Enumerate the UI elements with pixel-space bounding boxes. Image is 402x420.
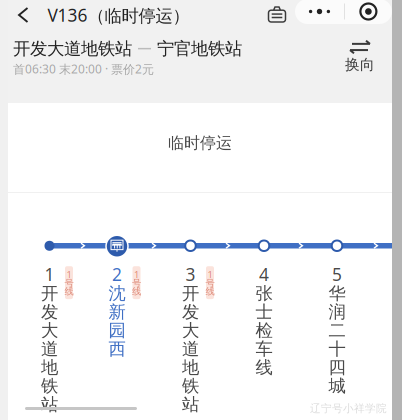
staticText: 四 xyxy=(328,357,345,378)
staticText: 1 xyxy=(66,268,71,281)
button[interactable]: 3 xyxy=(179,263,221,419)
staticText: 士 xyxy=(255,301,272,323)
staticText: 发 xyxy=(41,301,58,323)
staticText: 车 xyxy=(255,338,272,360)
staticText: 发 xyxy=(182,301,199,323)
staticText: 沈 xyxy=(108,283,125,304)
staticText: 铁 xyxy=(182,375,199,397)
staticText: V136（临时停运） xyxy=(47,3,189,26)
button[interactable]: 4 xyxy=(253,263,295,419)
staticText: 宁官地铁站 xyxy=(157,38,242,59)
staticText: 线 xyxy=(132,286,141,297)
staticText: 辽宁号小祥学院 xyxy=(310,402,387,415)
staticText: 道 xyxy=(41,338,58,360)
staticText: 临时停运 xyxy=(168,133,232,153)
staticText: 号 xyxy=(64,277,73,289)
staticText: 道 xyxy=(182,338,199,360)
staticText: 张 xyxy=(255,283,272,304)
staticText: 站 xyxy=(41,394,58,415)
staticText: 3 xyxy=(185,263,195,286)
button[interactable]: 换向 xyxy=(333,36,387,80)
staticText: 换向 xyxy=(345,55,375,73)
staticText: 十 xyxy=(328,338,345,360)
button[interactable]: More xyxy=(295,0,344,24)
staticText: 铁 xyxy=(41,375,58,397)
staticText: 开 xyxy=(182,283,199,304)
staticText: 二 xyxy=(328,320,345,341)
staticText: 5 xyxy=(332,263,342,286)
staticText: 西 xyxy=(108,338,125,360)
button[interactable]: Back xyxy=(0,0,199,30)
staticText: 线 xyxy=(255,357,272,378)
staticText: 4 xyxy=(259,263,269,286)
staticText: 华 xyxy=(328,283,345,304)
staticText: 城 xyxy=(328,375,345,397)
staticText: 1 xyxy=(44,263,54,286)
staticText: 1 xyxy=(207,268,212,281)
staticText: 大 xyxy=(182,320,199,341)
staticText: 润 xyxy=(328,301,345,323)
staticText: 号 xyxy=(132,277,141,289)
staticText: 开发大道地铁站 xyxy=(13,38,132,59)
staticText: 首06:30 末20:00 · 票价2元 xyxy=(13,61,154,77)
staticText: 地 xyxy=(41,357,58,378)
staticText: 开 xyxy=(41,283,58,304)
staticText: 站 xyxy=(182,394,199,415)
staticText: 2 xyxy=(112,263,122,286)
staticText: 地 xyxy=(182,357,199,378)
button[interactable]: 2 xyxy=(106,263,148,419)
staticText: 园 xyxy=(108,320,125,341)
staticText: 线 xyxy=(64,286,73,297)
staticText: 检 xyxy=(255,320,272,341)
staticText: 号 xyxy=(205,277,214,289)
staticText: 线 xyxy=(205,286,214,297)
button[interactable]: Notes xyxy=(262,0,292,29)
button[interactable]: Close xyxy=(345,0,392,24)
staticText: 1 xyxy=(134,268,139,281)
button[interactable]: 1 xyxy=(38,263,80,419)
staticText: 新 xyxy=(108,301,125,323)
button[interactable]: 5 xyxy=(326,263,368,419)
staticText: 大 xyxy=(41,320,58,341)
